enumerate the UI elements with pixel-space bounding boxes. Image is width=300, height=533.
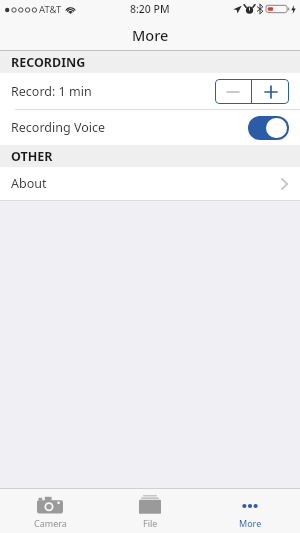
staticText: RECORDING: [11, 54, 86, 71]
staticText: AT&T: [39, 3, 62, 16]
staticText: File: [143, 517, 158, 529]
button[interactable]: File: [100, 489, 200, 533]
staticText: Recording Voice: [11, 119, 105, 136]
staticText: About: [11, 175, 47, 192]
button[interactable]: About: [0, 167, 300, 200]
staticText: Camera: [34, 517, 67, 529]
button[interactable]: Recording Voice toggle: [248, 116, 289, 140]
button[interactable]: Recording Voice: [0, 110, 300, 145]
staticText: More: [132, 25, 169, 45]
button[interactable]: Increase: [252, 79, 289, 104]
staticText: More: [239, 517, 262, 529]
button[interactable]: More: [200, 489, 300, 533]
staticText: 8:20 PM: [130, 2, 170, 16]
button[interactable]: Camera: [0, 489, 100, 533]
staticText: Record: 1 min: [11, 83, 92, 100]
button[interactable]: Decrease: [215, 79, 251, 104]
button[interactable]: Record: 1 min: [0, 73, 300, 109]
staticText: OTHER: [11, 148, 53, 165]
